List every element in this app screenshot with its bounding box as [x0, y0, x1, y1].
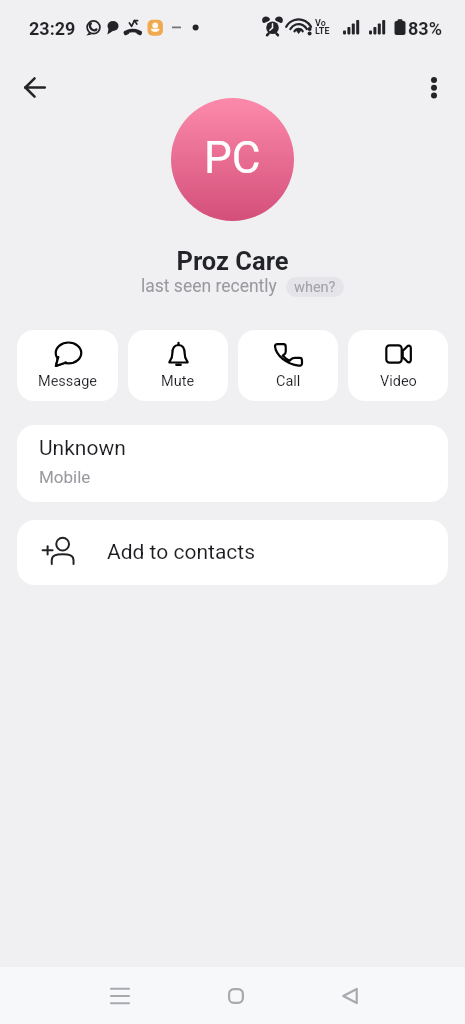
staticText: Video — [380, 373, 417, 390]
staticText: Unknown — [39, 436, 126, 461]
button[interactable]: Add to contacts — [17, 520, 448, 585]
staticText: Mobile — [39, 467, 91, 487]
button[interactable]: Back — [12, 65, 58, 111]
button[interactable]: PC — [171, 98, 294, 221]
button[interactable]: Unknown — [17, 425, 448, 502]
button[interactable]: Back — [312, 967, 388, 1024]
staticText: Vo — [315, 18, 326, 29]
button[interactable]: Video — [348, 330, 448, 401]
staticText: PC — [204, 132, 261, 184]
button[interactable]: Mute — [128, 330, 228, 401]
staticText: Add to contacts — [107, 540, 256, 565]
button[interactable]: More options — [411, 65, 457, 111]
staticText: Proz Care — [0, 246, 465, 276]
button[interactable]: Message — [17, 330, 118, 401]
staticText: last seen recently — [141, 276, 277, 297]
staticText: Call — [276, 373, 301, 390]
button[interactable]: when? — [286, 277, 344, 297]
staticText: when? — [294, 279, 336, 296]
button[interactable]: Call — [238, 330, 338, 401]
staticText: LTE — [315, 26, 330, 37]
button[interactable]: Home — [198, 967, 274, 1024]
staticText: 83% — [408, 18, 442, 39]
staticText: Message — [38, 373, 98, 390]
staticText: Mute — [161, 373, 195, 390]
staticText: 23:29 — [29, 18, 76, 39]
button[interactable]: Recent apps — [82, 967, 158, 1024]
